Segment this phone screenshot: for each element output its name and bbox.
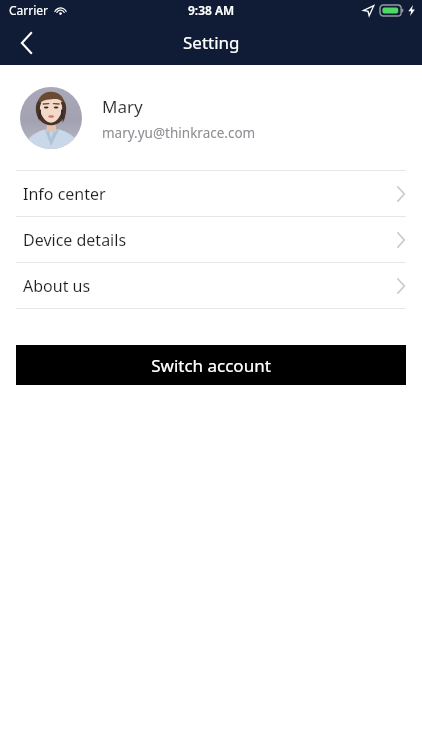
button[interactable]: Profile photo — [0, 87, 422, 149]
button[interactable]: Profile photo — [20, 87, 82, 149]
staticText: mary.yu@thinkrace.com — [102, 124, 256, 142]
staticText: Device details — [23, 229, 127, 251]
staticText: Carrier — [9, 2, 49, 18]
staticText: About us — [23, 275, 91, 297]
staticText: 9:38 AM — [188, 2, 235, 18]
button[interactable]: Switch account — [16, 345, 406, 385]
staticText: Setting — [183, 31, 240, 54]
button[interactable]: About us — [0, 263, 422, 308]
button[interactable]: Back — [0, 20, 52, 65]
button[interactable]: Info center — [0, 171, 422, 216]
button[interactable]: Device details — [0, 217, 422, 262]
staticText: Switch account — [151, 354, 271, 377]
staticText: Info center — [23, 183, 106, 205]
staticText: Mary — [102, 95, 143, 118]
